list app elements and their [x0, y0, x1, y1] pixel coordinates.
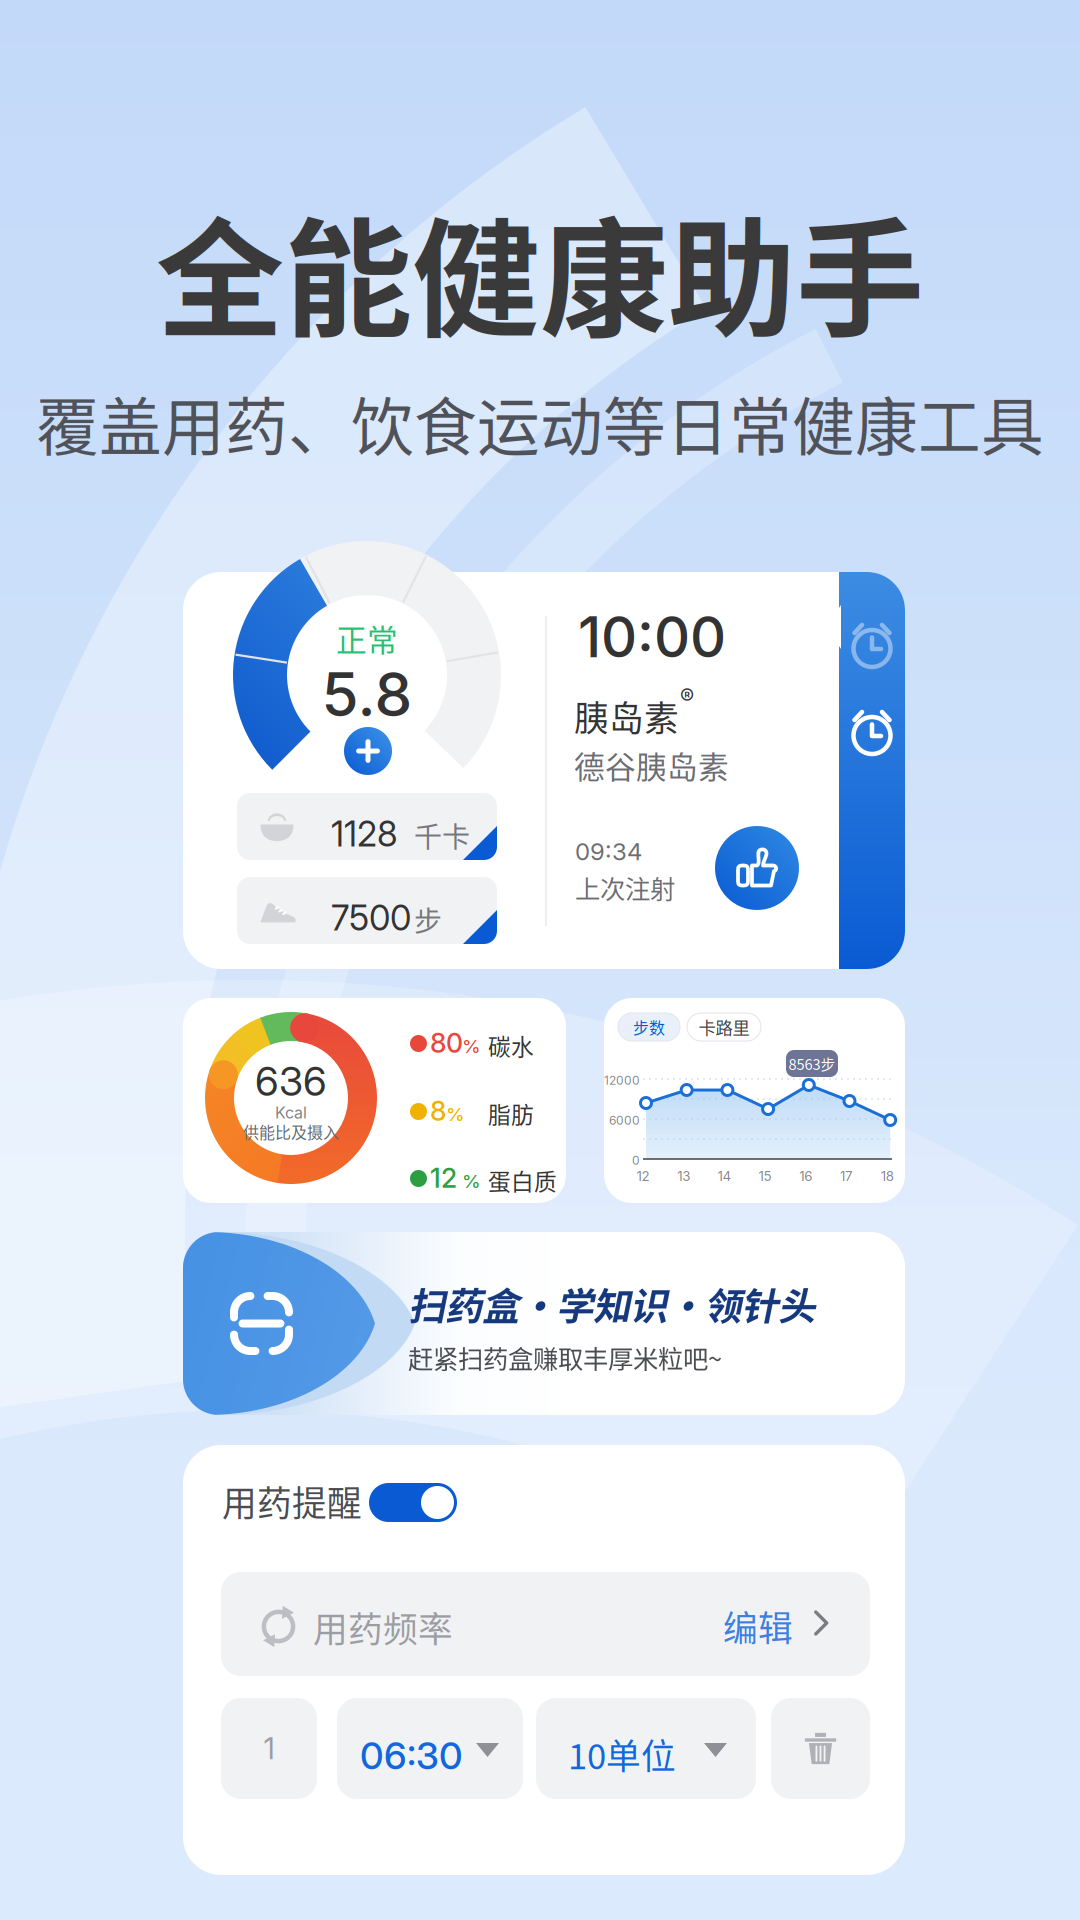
staticText: 80 — [430, 1027, 463, 1059]
staticText: 上次注射 — [575, 869, 675, 906]
staticText: 14 — [717, 1168, 731, 1184]
staticText: % — [446, 1103, 465, 1126]
button[interactable]: 步数 — [618, 1013, 680, 1041]
staticText: 18 — [881, 1168, 894, 1184]
staticText: 步数 — [633, 1015, 665, 1039]
staticText: 用药提醒 — [222, 1476, 362, 1526]
staticText: 5.8 — [321, 658, 412, 731]
staticText: 15 — [759, 1168, 772, 1184]
staticText: 8 — [430, 1095, 446, 1127]
staticText: 扫药盒·学知识·领针头 — [408, 1277, 815, 1331]
staticText: 12 — [636, 1168, 649, 1184]
button[interactable]: 1128 — [237, 793, 497, 860]
staticText: 卡路里 — [698, 1014, 749, 1040]
staticText: 用药频率 — [313, 1602, 453, 1652]
staticText: % — [462, 1035, 481, 1058]
staticText: 碳水 — [488, 1029, 534, 1062]
staticText: 7500 — [331, 897, 411, 939]
button[interactable]: 添加血糖记录 — [344, 727, 392, 775]
staticText: ® — [680, 684, 694, 710]
staticText: 脂肪 — [488, 1097, 534, 1130]
staticText: 1128 — [331, 813, 398, 855]
staticText: 正常 — [336, 616, 398, 660]
staticText: 德谷胰岛素 — [574, 743, 729, 787]
staticText: 步 — [414, 899, 442, 939]
button[interactable]: 删除该条提醒 — [771, 1698, 870, 1799]
staticText: 13 — [677, 1168, 690, 1184]
staticText: 编辑 — [723, 1601, 793, 1651]
staticText: Kcal — [275, 1103, 307, 1122]
staticText: 全能健康助手 — [156, 178, 924, 363]
button[interactable]: 用药频率 — [221, 1572, 870, 1676]
staticText: 胰岛素 — [574, 691, 679, 741]
staticText: 1 — [263, 1731, 274, 1766]
staticText: 12000 — [604, 1073, 640, 1087]
staticText: 12 — [430, 1162, 457, 1194]
staticText: 6000 — [609, 1113, 640, 1127]
button[interactable]: 7500 — [237, 877, 497, 944]
staticText: 06:30 — [360, 1733, 463, 1778]
staticText: 636 — [255, 1057, 327, 1105]
button[interactable]: 下一次提醒 — [847, 620, 897, 670]
staticText: 蛋白质 — [488, 1164, 557, 1197]
staticText: 10单位 — [568, 1729, 676, 1779]
staticText: 09:34 — [575, 837, 642, 866]
button[interactable]: 扫药盒·学知识·领针头 — [183, 1232, 905, 1415]
button[interactable]: 卡路里 — [687, 1013, 761, 1041]
staticText: 10:00 — [578, 603, 726, 671]
staticText: 赶紧扫药盒赚取丰厚米粒吧~ — [408, 1339, 722, 1376]
staticText: 覆盖用药、饮食运动等日常健康工具 — [36, 377, 1044, 468]
staticText: 17 — [840, 1168, 853, 1184]
button[interactable]: 06:30 — [337, 1698, 523, 1799]
button[interactable]: 提醒设置 — [847, 707, 897, 757]
staticText: 16 — [799, 1168, 812, 1184]
button[interactable]: 用药提醒开关 — [369, 1483, 457, 1522]
button[interactable]: 确认已注射 — [715, 826, 799, 910]
staticText: 8563步 — [788, 1053, 835, 1074]
staticText: 千卡 — [414, 815, 470, 855]
staticText: 0 — [632, 1153, 640, 1167]
staticText: % — [462, 1170, 481, 1193]
staticText: 供能比及摄入 — [243, 1120, 339, 1143]
button[interactable]: 10单位 — [536, 1698, 756, 1799]
